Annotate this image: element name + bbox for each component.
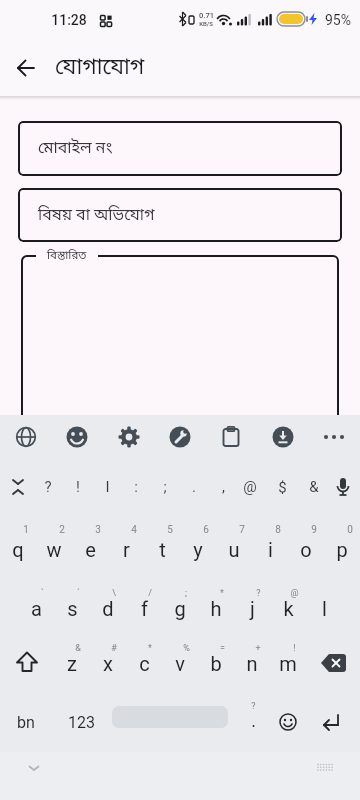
button[interactable]: b xyxy=(198,646,234,680)
staticText: , xyxy=(222,478,225,496)
button[interactable]: I xyxy=(92,464,122,510)
button[interactable]: a xyxy=(18,591,54,625)
button[interactable]: bn xyxy=(1,702,51,742)
button[interactable]: ! xyxy=(63,464,93,510)
button[interactable]: y xyxy=(180,532,216,566)
button[interactable]: বিষয় বা অভিযোগ xyxy=(18,188,342,242)
staticText: r xyxy=(123,538,130,561)
button[interactable]: f xyxy=(126,591,162,625)
button[interactable]: w xyxy=(36,532,72,566)
staticText: n xyxy=(246,652,258,675)
staticText: 0.71 xyxy=(199,11,214,20)
button[interactable]: 123 xyxy=(56,702,106,742)
button[interactable]: n xyxy=(234,646,270,680)
staticText: s xyxy=(67,597,78,620)
staticText: 11:28 xyxy=(51,12,87,28)
staticText: : xyxy=(134,478,138,496)
staticText: v xyxy=(175,652,185,675)
button[interactable]: r xyxy=(108,532,144,566)
staticText: ´ xyxy=(77,588,80,599)
button[interactable] xyxy=(26,760,42,776)
staticText: যোগাযোগ xyxy=(55,54,145,83)
button[interactable]: m xyxy=(270,646,306,680)
button[interactable]: ; xyxy=(150,464,180,510)
staticText: 0 xyxy=(347,524,353,536)
button[interactable]: q xyxy=(0,532,36,566)
button[interactable]: l xyxy=(306,591,342,625)
staticText: 6 xyxy=(203,524,209,536)
staticText: j xyxy=(250,597,255,620)
button[interactable]: s xyxy=(54,591,90,625)
button[interactable] xyxy=(21,255,339,421)
button[interactable] xyxy=(271,425,295,449)
button[interactable]: i xyxy=(252,532,288,566)
button[interactable] xyxy=(322,425,346,449)
button[interactable] xyxy=(14,650,40,676)
staticText: 5 xyxy=(167,524,173,536)
staticText: y xyxy=(193,538,203,561)
button[interactable]: d xyxy=(90,591,126,625)
staticText: * xyxy=(220,588,224,599)
button[interactable]: g xyxy=(162,591,198,625)
button[interactable] xyxy=(319,710,343,734)
button[interactable]: e xyxy=(72,532,108,566)
staticText: . xyxy=(192,478,196,496)
staticText: o xyxy=(300,538,312,561)
staticText: ? xyxy=(256,588,261,599)
staticText: 1 xyxy=(23,524,29,536)
staticText: 8 xyxy=(275,524,281,536)
staticText: w xyxy=(46,538,62,561)
staticText: 9 xyxy=(311,524,317,536)
staticText: a xyxy=(31,597,42,620)
button[interactable] xyxy=(332,476,354,498)
button[interactable]: , xyxy=(208,464,238,510)
button[interactable]: @ xyxy=(235,464,265,510)
staticText: / xyxy=(148,588,152,599)
button[interactable]: o xyxy=(288,532,324,566)
button[interactable]: $ xyxy=(267,464,297,510)
button[interactable]: k xyxy=(270,591,306,625)
button[interactable] xyxy=(316,759,334,777)
button[interactable]: u xyxy=(216,532,252,566)
button[interactable]: x xyxy=(90,646,126,680)
staticText: ` xyxy=(41,588,44,599)
staticText: z xyxy=(67,652,77,675)
staticText: bn xyxy=(17,713,35,732)
button[interactable] xyxy=(278,712,298,732)
button[interactable]: c xyxy=(126,646,162,680)
staticText: বিষয় বা অভিযোগ xyxy=(38,205,155,226)
staticText: 3 xyxy=(95,524,101,536)
button[interactable] xyxy=(65,425,89,449)
staticText: $ xyxy=(278,478,287,496)
button[interactable]: & xyxy=(299,464,329,510)
button[interactable] xyxy=(168,425,192,449)
button[interactable]: z xyxy=(54,646,90,680)
staticText: m xyxy=(279,652,297,675)
button[interactable] xyxy=(117,425,141,449)
button[interactable] xyxy=(14,56,38,80)
button[interactable]: h xyxy=(198,591,234,625)
button[interactable] xyxy=(14,425,38,449)
staticText: b xyxy=(210,652,222,675)
button[interactable]: মোবাইল নং xyxy=(18,121,342,176)
button[interactable] xyxy=(219,425,243,449)
button[interactable]: j xyxy=(234,591,270,625)
button[interactable]: : xyxy=(121,464,151,510)
button[interactable]: p xyxy=(324,532,360,566)
button[interactable] xyxy=(8,477,28,497)
staticText: \ xyxy=(112,588,116,599)
staticText: q xyxy=(12,538,24,561)
staticText: & xyxy=(75,643,81,654)
button[interactable]: t xyxy=(144,532,180,566)
button[interactable] xyxy=(319,649,347,677)
staticText: বিস্তারিত xyxy=(47,248,87,263)
staticText: 2 xyxy=(59,524,65,536)
button[interactable]: . xyxy=(179,464,209,510)
staticText: & xyxy=(309,478,319,496)
staticText: মোবাইল নং xyxy=(38,138,113,159)
button[interactable]: ? xyxy=(33,464,63,510)
button[interactable]: v xyxy=(162,646,198,680)
button[interactable]: . xyxy=(241,703,265,737)
staticText: t xyxy=(159,538,166,561)
